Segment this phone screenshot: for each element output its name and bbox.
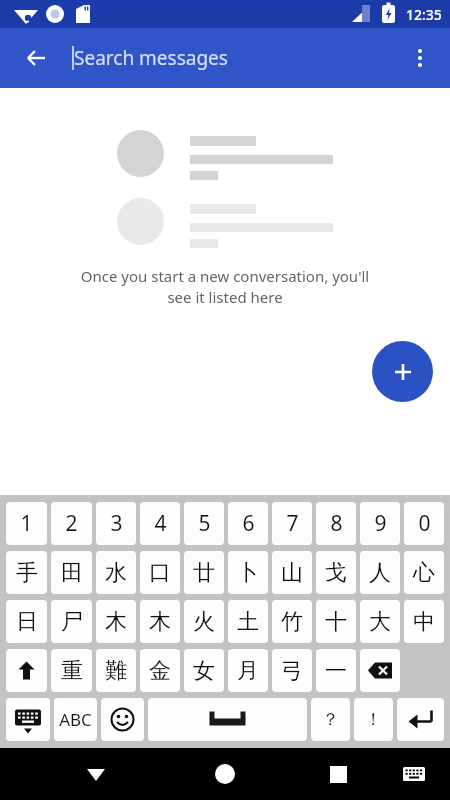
button[interactable]: 卜 <box>228 551 268 594</box>
button[interactable]: Emoji <box>101 698 144 741</box>
button[interactable]: 重 <box>51 649 92 692</box>
staticText: 6 <box>242 509 255 538</box>
staticText: 日 <box>16 608 38 636</box>
staticText: 0 <box>418 509 431 538</box>
staticText: 中 <box>413 608 435 636</box>
staticText: 水 <box>105 559 127 587</box>
staticText: 口 <box>149 559 171 587</box>
button[interactable]: 水 <box>96 551 136 594</box>
staticText: 9 <box>374 509 387 538</box>
staticText: 手 <box>16 559 38 587</box>
button[interactable]: 十 <box>316 600 356 643</box>
staticText: 尸 <box>61 608 83 636</box>
staticText: 木 <box>149 608 171 636</box>
staticText: 月 <box>237 657 259 685</box>
button[interactable]: Back <box>72 750 120 798</box>
button[interactable]: 1 <box>6 502 47 545</box>
button[interactable]: Backspace <box>360 649 400 692</box>
button[interactable]: 木 <box>140 600 180 643</box>
button[interactable]: 大 <box>360 600 400 643</box>
staticText: Once you start a new conversation, you'l… <box>40 266 410 308</box>
button[interactable]: 0 <box>404 502 444 545</box>
staticText: 4 <box>154 509 167 538</box>
staticText: 廿 <box>193 559 215 587</box>
button[interactable]: 竹 <box>272 600 312 643</box>
staticText: 12:35 <box>406 5 442 24</box>
button[interactable]: 土 <box>228 600 268 643</box>
button[interactable]: 日 <box>6 600 47 643</box>
staticText: 重 <box>61 657 83 685</box>
button[interactable]: Enter <box>397 698 444 741</box>
staticText: 1 <box>20 509 33 538</box>
button[interactable]: 6 <box>228 502 268 545</box>
button[interactable]: 戈 <box>316 551 356 594</box>
button[interactable]: 9 <box>360 502 400 545</box>
button[interactable]: 弓 <box>272 649 312 692</box>
button[interactable]: 火 <box>184 600 224 643</box>
button[interactable]: 一 <box>316 649 356 692</box>
button[interactable]: 女 <box>184 649 224 692</box>
staticText: ！ <box>365 709 382 730</box>
staticText: 竹 <box>281 608 303 636</box>
button[interactable]: 廿 <box>184 551 224 594</box>
staticText: ？ <box>322 709 339 730</box>
staticText: 卜 <box>237 559 259 587</box>
button[interactable]: 4 <box>140 502 180 545</box>
staticText: 5 <box>198 509 211 538</box>
staticText: 田 <box>61 559 83 587</box>
button[interactable]: 月 <box>228 649 268 692</box>
button[interactable]: 手 <box>6 551 47 594</box>
staticText: 心 <box>413 559 435 587</box>
button[interactable]: 7 <box>272 502 312 545</box>
button[interactable]: 田 <box>51 551 92 594</box>
staticText: 一 <box>325 657 347 685</box>
button[interactable]: 2 <box>51 502 92 545</box>
staticText: 土 <box>237 608 259 636</box>
button[interactable]: 3 <box>96 502 136 545</box>
staticText: 3 <box>110 509 123 538</box>
staticText: 8 <box>330 509 343 538</box>
button[interactable]: Switch keyboard <box>6 698 50 741</box>
staticText: 人 <box>369 559 391 587</box>
button[interactable]: 尸 <box>51 600 92 643</box>
staticText: 2 <box>65 509 78 538</box>
button[interactable]: ！ <box>354 698 393 741</box>
staticText: 木 <box>105 608 127 636</box>
staticText: Search messages <box>74 45 228 71</box>
staticText: ABC <box>59 708 92 731</box>
button[interactable]: Back <box>12 34 60 82</box>
staticText: 金 <box>149 657 171 685</box>
button[interactable]: 中 <box>404 600 444 643</box>
staticText: 火 <box>193 608 215 636</box>
button[interactable]: 金 <box>140 649 180 692</box>
button[interactable]: 心 <box>404 551 444 594</box>
button[interactable]: Start new conversation <box>372 341 433 402</box>
button[interactable]: More options <box>396 34 444 82</box>
button[interactable]: 木 <box>96 600 136 643</box>
button[interactable]: Keyboard <box>390 750 438 798</box>
staticText: 7 <box>286 509 299 538</box>
staticText: 女 <box>193 657 215 685</box>
button[interactable]: 難 <box>96 649 136 692</box>
staticText: 戈 <box>325 559 347 587</box>
button[interactable]: 人 <box>360 551 400 594</box>
button[interactable]: ABC <box>54 698 97 741</box>
button[interactable]: 口 <box>140 551 180 594</box>
button[interactable]: Home <box>201 750 249 798</box>
staticText: 弓 <box>281 657 303 685</box>
staticText: 難 <box>105 657 127 685</box>
button[interactable]: 8 <box>316 502 356 545</box>
staticText: 十 <box>325 608 347 636</box>
button[interactable]: 山 <box>272 551 312 594</box>
staticText: 大 <box>369 608 391 636</box>
button[interactable]: Shift <box>6 649 47 692</box>
staticText: 山 <box>281 559 303 587</box>
button[interactable]: Space <box>148 698 307 741</box>
button[interactable]: Recents <box>314 750 362 798</box>
button[interactable]: ？ <box>311 698 350 741</box>
button[interactable]: 5 <box>184 502 224 545</box>
